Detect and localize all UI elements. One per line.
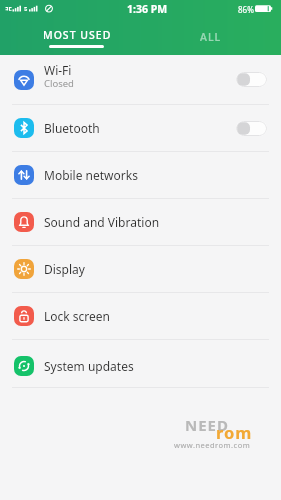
staticText: www.needrom.com bbox=[174, 440, 251, 450]
staticText: Sound and Vibration bbox=[44, 214, 160, 230]
staticText: Lock screen bbox=[44, 308, 111, 324]
button[interactable]: Lock screen bbox=[0, 293, 281, 339]
staticText: Mobile networks bbox=[44, 167, 138, 183]
button[interactable] bbox=[236, 121, 267, 136]
staticText: System updates bbox=[44, 358, 134, 374]
button[interactable]: Sound and Vibration bbox=[0, 199, 281, 245]
staticText: Bluetooth bbox=[44, 120, 100, 136]
staticText: ALL bbox=[200, 30, 222, 44]
staticText: MOST USED bbox=[43, 28, 112, 42]
staticText: Display bbox=[44, 261, 85, 277]
button[interactable]: Wi-Fi bbox=[0, 55, 281, 104]
button[interactable]: ALL bbox=[140, 18, 281, 55]
button[interactable] bbox=[236, 72, 267, 87]
staticText: 1:36 PM bbox=[127, 2, 168, 16]
button[interactable]: MOST USED bbox=[0, 18, 140, 55]
button[interactable]: System updates bbox=[0, 344, 281, 387]
staticText: Wi-Fi bbox=[44, 62, 72, 78]
button[interactable]: Mobile networks bbox=[0, 152, 281, 198]
staticText: rom bbox=[216, 421, 253, 443]
button[interactable]: Display bbox=[0, 246, 281, 292]
staticText: Closed bbox=[44, 77, 74, 90]
staticText: 86% bbox=[238, 4, 254, 15]
staticText: NEED bbox=[185, 415, 229, 435]
button[interactable]: Bluetooth bbox=[0, 105, 281, 151]
